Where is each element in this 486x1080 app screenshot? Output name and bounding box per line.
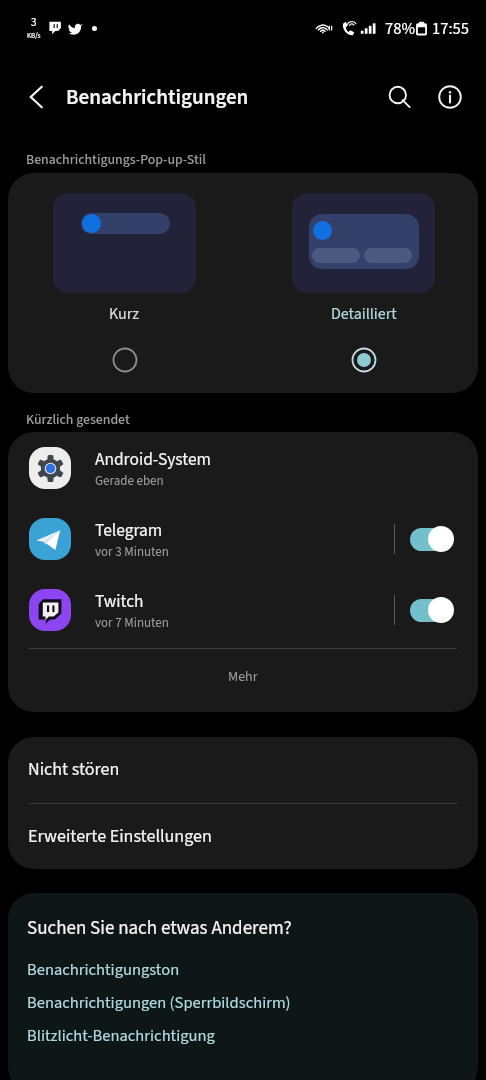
staticText: Benachrichtigungs-Pop-up-Stil: [26, 150, 206, 170]
button[interactable]: Suchen: [375, 72, 425, 122]
button[interactable]: Blitzlicht-Benachrichtigung: [27, 1024, 215, 1047]
staticText: Benachrichtigungen (Sperrbildschirm): [27, 991, 291, 1014]
staticText: Kürzlich gesendet: [26, 410, 130, 430]
staticText: Suchen Sie nach etwas Anderem?: [27, 915, 292, 942]
staticText: Twitch: [95, 589, 144, 614]
button[interactable]: Twitch: [8, 574, 478, 645]
staticText: Kurz: [109, 303, 140, 326]
staticText: Erweiterte Einstellungen: [28, 824, 212, 850]
button[interactable]: Mehr: [8, 646, 478, 707]
staticText: vor 3 Minuten: [95, 543, 169, 562]
button[interactable]: Nicht stören: [8, 737, 478, 803]
button[interactable]: Kurz: [53, 173, 196, 373]
staticText: Telegram: [95, 518, 163, 543]
button[interactable]: Benachrichtigungston: [27, 958, 180, 981]
button[interactable]: Umschalten: [408, 596, 454, 624]
button[interactable]: Telegram: [8, 503, 478, 574]
staticText: Mehr: [228, 667, 258, 687]
button[interactable]: Erweiterte Einstellungen: [8, 804, 478, 869]
staticText: Nicht stören: [28, 757, 120, 783]
button[interactable]: Benachrichtigungen (Sperrbildschirm): [27, 991, 291, 1014]
staticText: Detailliert: [331, 303, 397, 326]
button[interactable]: Zurück: [14, 74, 60, 120]
button[interactable]: Detailliert: [292, 173, 435, 373]
staticText: Gerade eben: [95, 472, 164, 491]
staticText: Benachrichtigungen: [66, 82, 249, 112]
staticText: vor 7 Minuten: [95, 614, 169, 633]
staticText: Blitzlicht-Benachrichtigung: [27, 1024, 215, 1047]
button[interactable]: Umschalten: [408, 525, 454, 553]
staticText: 3: [31, 15, 37, 31]
staticText: KB/s: [27, 31, 41, 41]
staticText: 17:55: [432, 17, 469, 40]
staticText: Benachrichtigungston: [27, 958, 180, 981]
button[interactable]: Info: [425, 72, 475, 122]
staticText: 78%: [385, 17, 415, 40]
staticText: Android-System: [95, 447, 211, 472]
button[interactable]: Android-System: [8, 432, 478, 503]
